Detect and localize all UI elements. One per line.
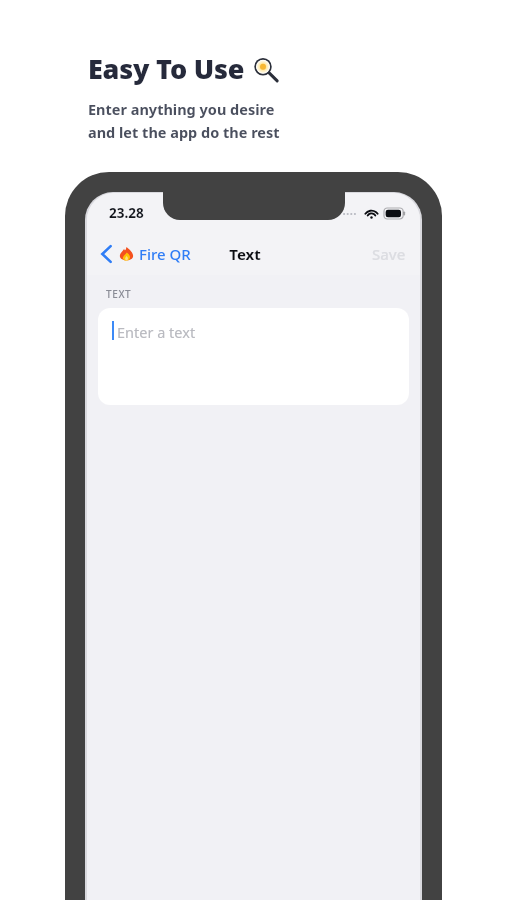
other: Fire bbox=[119, 247, 134, 262]
staticText: Enter anything you desire bbox=[88, 99, 275, 119]
other: Magnifying glass bbox=[253, 57, 279, 83]
staticText: Save bbox=[372, 244, 406, 264]
staticText: Text bbox=[229, 244, 261, 264]
staticText: Enter a text bbox=[117, 322, 196, 342]
button[interactable]: Save bbox=[358, 238, 420, 270]
button[interactable]: Enter a text bbox=[98, 308, 409, 405]
staticText: Fire QR bbox=[139, 244, 191, 264]
staticText: 23.28 bbox=[109, 204, 144, 222]
staticText: and let the app do the rest bbox=[88, 122, 280, 142]
button[interactable]: Fire bbox=[87, 240, 199, 268]
staticText: TEXT bbox=[106, 287, 132, 301]
staticText: Easy To Use bbox=[88, 50, 245, 87]
